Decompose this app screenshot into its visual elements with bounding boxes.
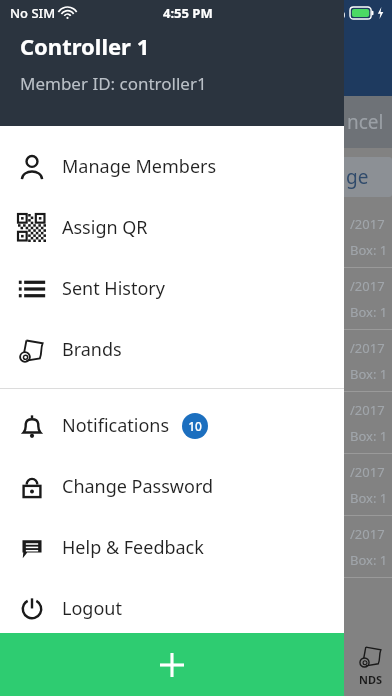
staticText: Assign QR [62,215,148,240]
staticText: No SIM [10,4,56,22]
staticText: /2017 [350,401,385,419]
staticText: Logout [62,596,122,621]
staticText: Notifications [62,413,170,438]
staticText: /2017 [350,463,385,481]
button[interactable]: Change Password [0,456,344,517]
button[interactable]: Help & Feedback [0,517,344,578]
staticText: Help & Feedback [62,535,204,560]
staticText: NDS [359,672,383,687]
staticText: Box: 1 [350,241,388,259]
staticText: Box: 1 [350,365,388,383]
button[interactable]: Sent History [0,258,344,319]
button[interactable]: Notifications [0,395,344,456]
staticText: Controller 1 [20,31,150,61]
staticText: Change Password [62,474,214,499]
staticText: ge [346,164,369,190]
staticText: Box: 1 [350,489,388,507]
staticText: /2017 [350,277,385,295]
staticText: Box: 1 [350,427,388,445]
staticText: Box: 1 [350,551,388,569]
staticText: /2017 [350,215,385,233]
staticText: 4:55 PM [163,4,213,22]
staticText: /2017 [350,339,385,357]
staticText: /2017 [350,525,385,543]
button[interactable]: Manage Members [0,136,344,197]
staticText: Manage Members [62,154,217,179]
staticText: ncel [347,109,384,135]
staticText: 10 [188,418,202,434]
staticText: Member ID: controller1 [20,72,207,95]
button[interactable]: Add [0,633,344,696]
button[interactable]: Assign QR [0,197,344,258]
staticText: Box: 1 [350,303,388,321]
staticText: 100% [312,4,346,22]
button[interactable]: Logout [0,578,344,639]
staticText: Brands [62,337,122,362]
button[interactable]: Brands [0,319,344,380]
staticText: Sent History [62,276,165,301]
